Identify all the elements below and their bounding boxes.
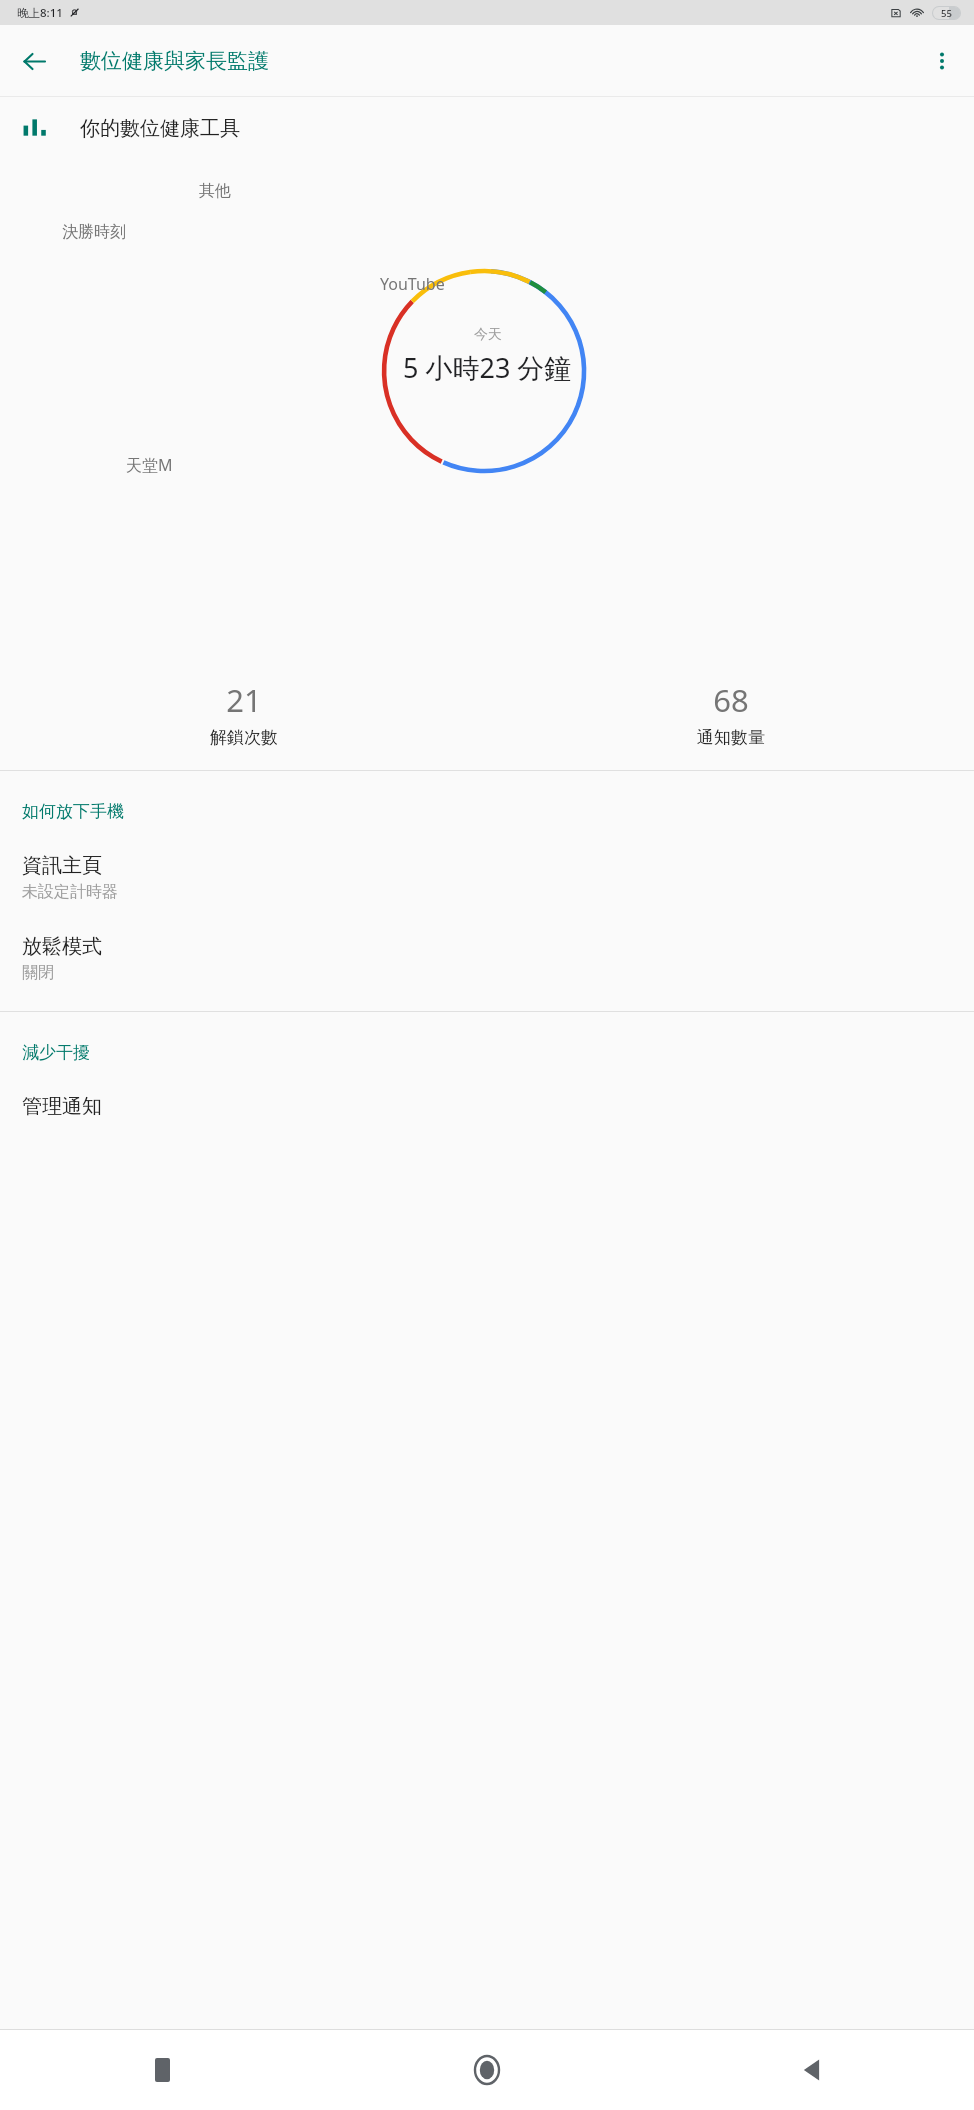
button[interactable]: 放鬆模式 [0,918,974,999]
staticText: 今天 [474,326,502,344]
button[interactable]: 管理通知 [0,1078,974,1135]
staticText: 你的數位健康工具 [80,116,240,141]
staticText: 未設定計時器 [22,882,118,902]
button[interactable]: 資訊主頁 [0,837,974,918]
staticText: 減少干擾 [22,1042,90,1063]
staticText: 55 [941,7,952,20]
staticText: 通知數量 [697,727,765,748]
button[interactable]: Back [10,37,58,85]
staticText: 管理通知 [22,1094,102,1119]
staticText: 解鎖次數 [210,727,278,748]
staticText: 關閉 [22,963,54,983]
staticText: 21 [226,679,262,721]
button[interactable]: Recent apps [0,2030,324,2110]
staticText: 如何放下手機 [22,801,124,822]
staticText: 放鬆模式 [22,934,102,959]
staticText: 資訊主頁 [22,853,102,878]
staticText: 數位健康與家長監護 [80,48,269,74]
staticText: 天堂M [126,454,173,476]
staticText: YouTube [380,273,445,295]
button[interactable]: 68 [487,679,974,748]
staticText: 決勝時刻 [62,222,126,242]
staticText: 晚上8:11 [17,5,63,21]
button[interactable]: More options [918,37,966,85]
button[interactable]: Home [324,2030,649,2110]
staticText: 5 小時23 分鐘 [403,349,572,386]
staticText: 68 [713,679,749,721]
button[interactable]: 21 [0,679,487,748]
staticText: 其他 [199,181,231,201]
button[interactable]: Back [649,2030,974,2110]
